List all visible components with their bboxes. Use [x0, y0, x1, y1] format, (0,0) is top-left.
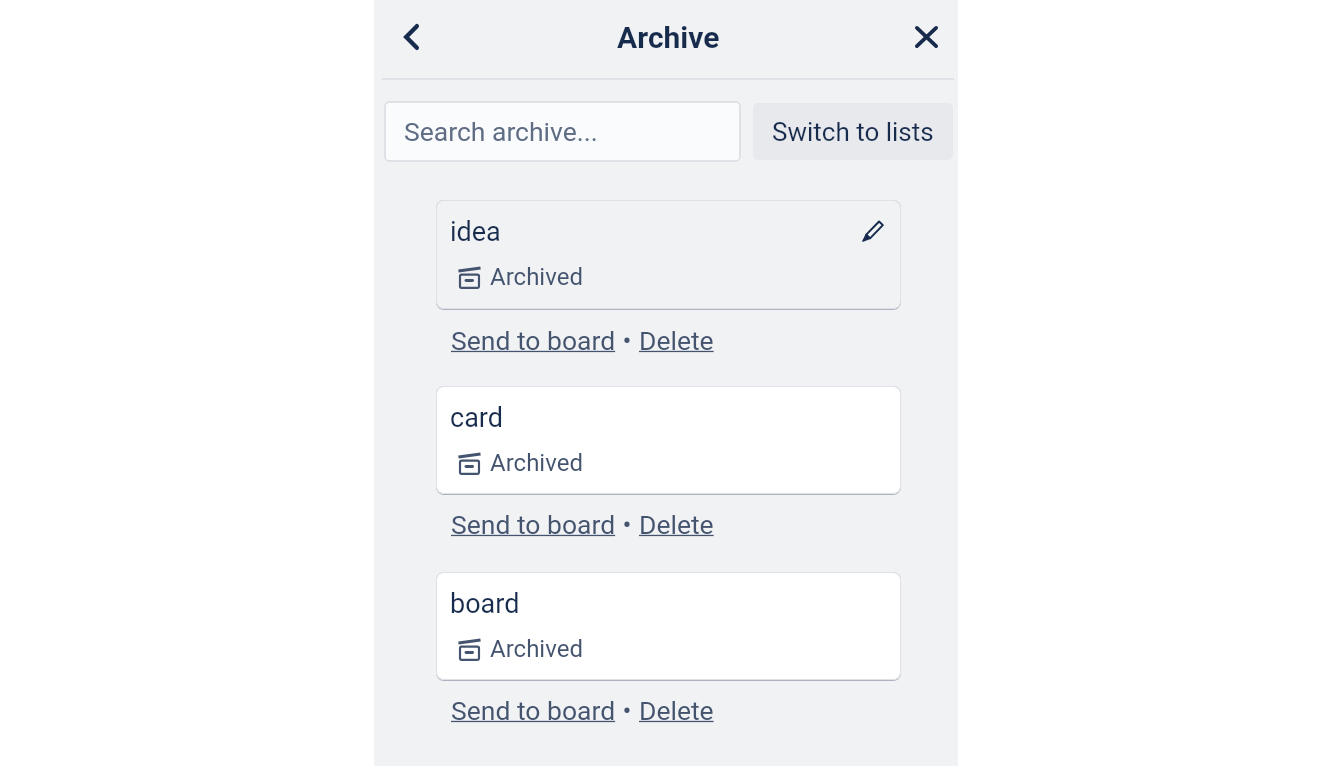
staticText: Send to board — [451, 509, 616, 540]
button[interactable]: Back — [389, 15, 433, 59]
button[interactable]: Send to board — [451, 695, 616, 726]
staticText: Switch to lists — [772, 117, 934, 147]
button[interactable]: card — [436, 386, 901, 494]
staticText: Archived — [490, 263, 583, 291]
staticText: • — [616, 695, 639, 726]
staticText: Send to board — [451, 695, 616, 726]
button[interactable]: board — [436, 572, 901, 680]
button[interactable]: Send to board — [451, 509, 616, 540]
staticText: • — [616, 325, 639, 356]
staticText: card — [450, 402, 503, 434]
staticText: idea — [450, 216, 501, 248]
staticText: • — [616, 509, 639, 540]
staticText: board — [450, 588, 520, 620]
button[interactable]: Search archive... — [384, 101, 741, 162]
button[interactable]: Send to board — [451, 325, 616, 356]
staticText: Search archive... — [404, 116, 598, 147]
button[interactable]: Close — [904, 15, 948, 59]
button[interactable]: Switch to lists — [753, 103, 953, 160]
button[interactable]: idea — [436, 200, 901, 309]
staticText: Delete — [639, 509, 714, 540]
staticText: Delete — [639, 695, 714, 726]
staticText: Archived — [490, 449, 583, 477]
staticText: Archived — [490, 635, 583, 663]
button[interactable]: Delete — [639, 695, 714, 726]
staticText: Archive — [617, 20, 720, 55]
staticText: Send to board — [451, 325, 616, 356]
button[interactable]: Delete — [639, 509, 714, 540]
staticText: Delete — [639, 325, 714, 356]
button[interactable]: Edit — [862, 219, 884, 241]
button[interactable]: Delete — [639, 325, 714, 356]
